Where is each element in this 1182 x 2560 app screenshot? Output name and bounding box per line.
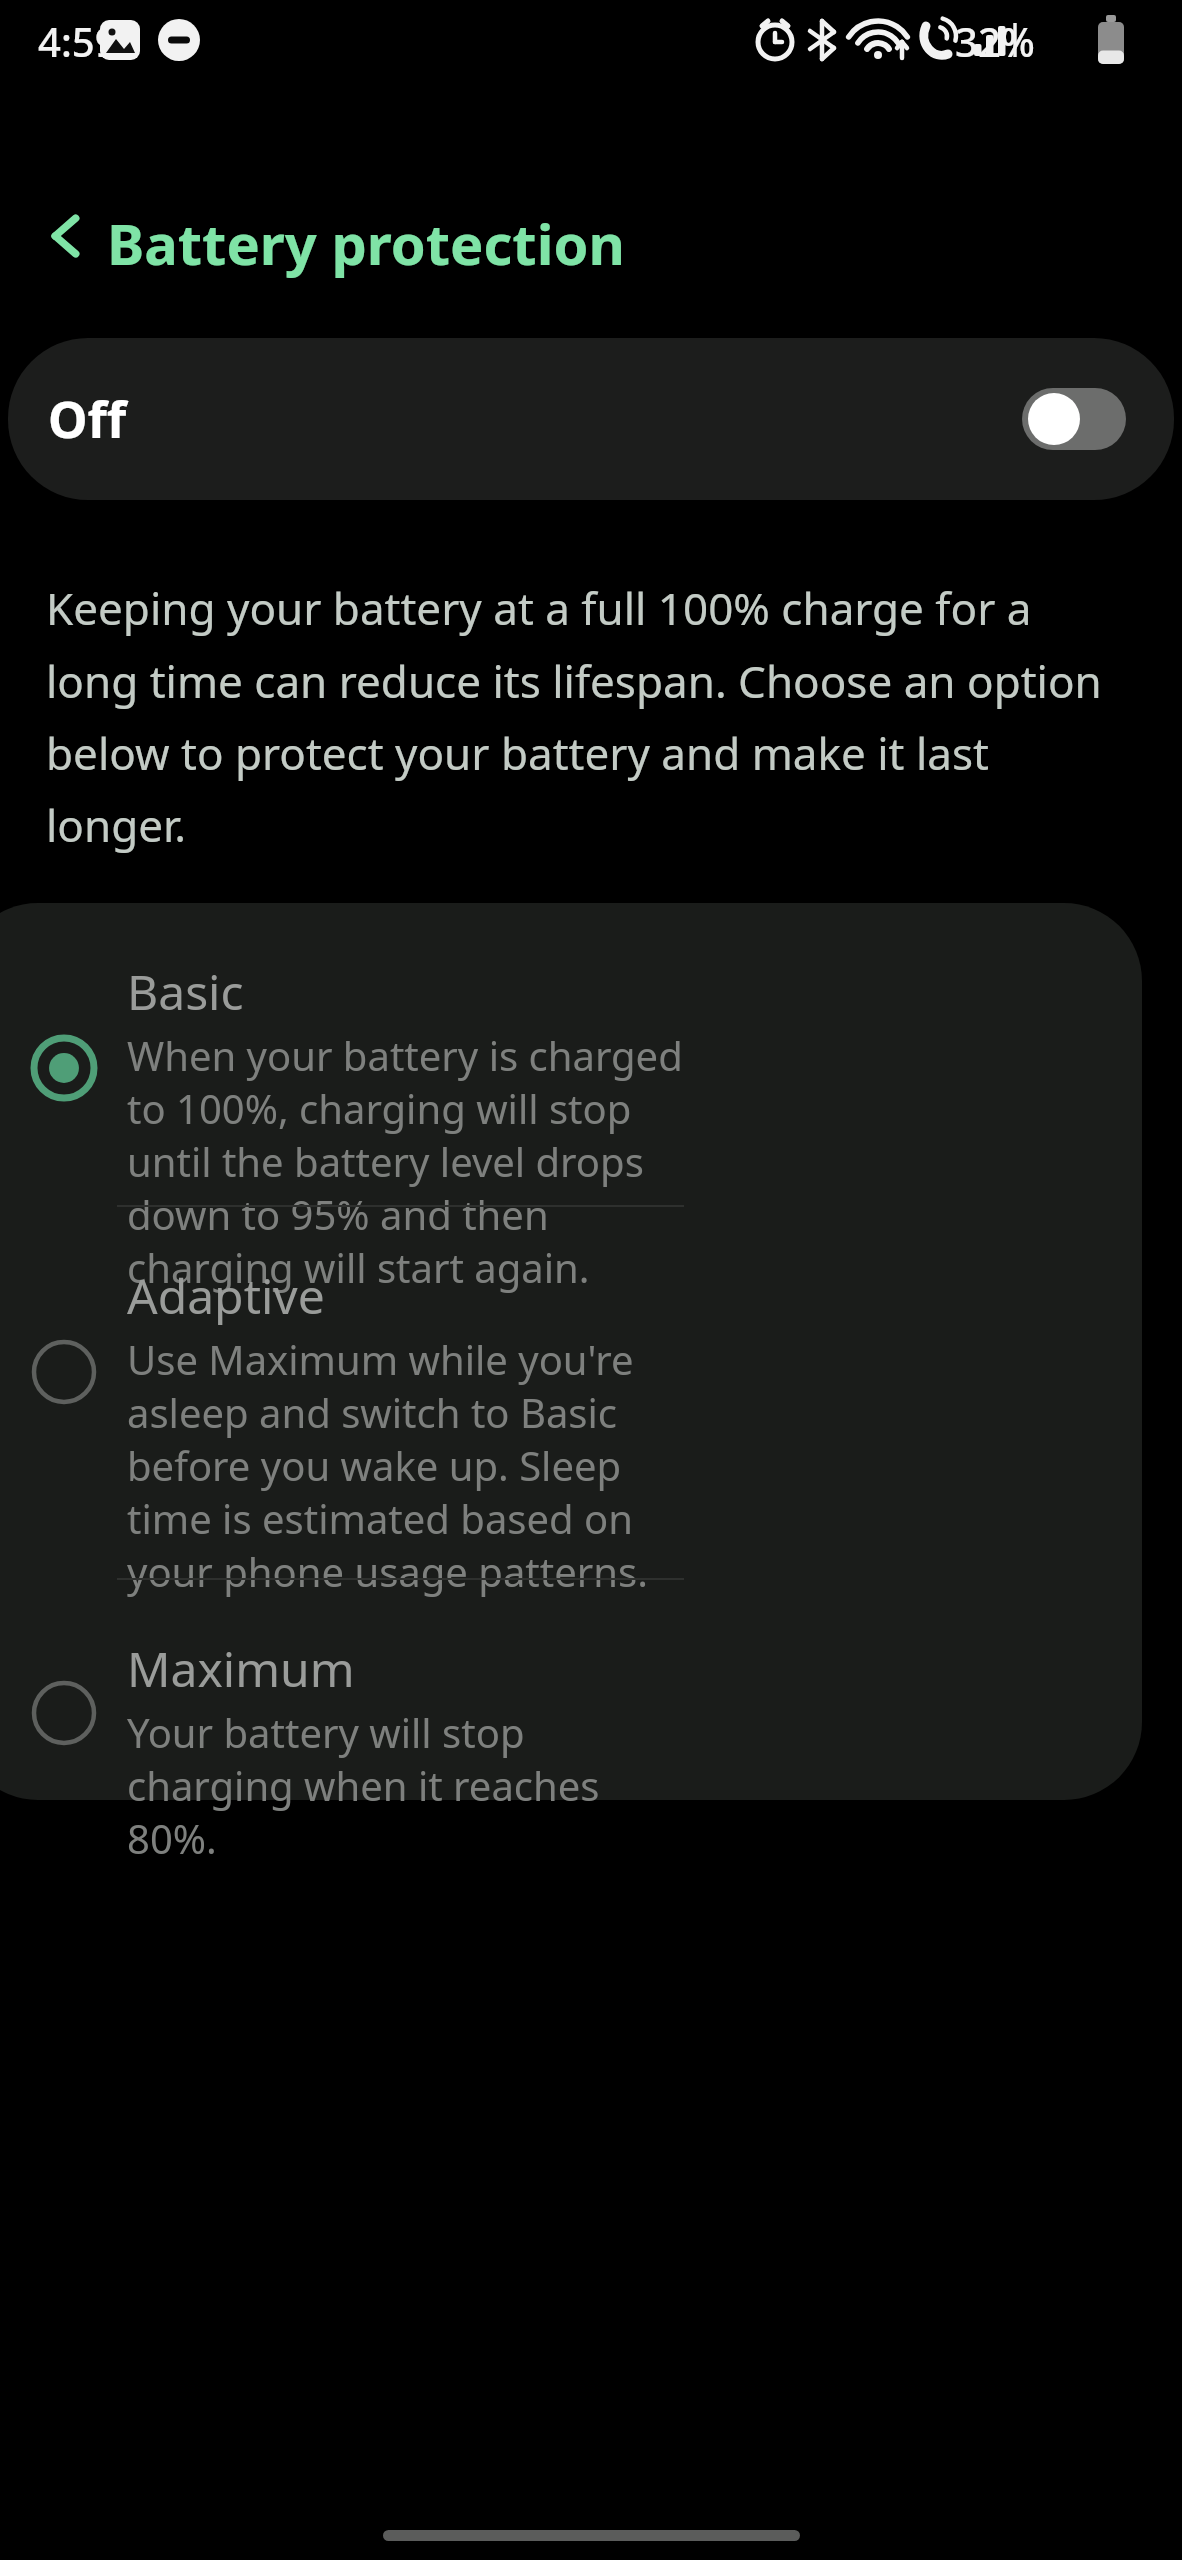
staticText: Your battery will stop charging when it … [127, 1705, 692, 1865]
button[interactable] [0, 903, 1182, 1201]
staticText: Off [48, 385, 127, 453]
staticText: When your battery is charged to 100%, ch… [127, 1028, 692, 1294]
button[interactable]: Off [8, 338, 1174, 500]
staticText: Battery protection [107, 205, 625, 281]
staticText: Basic [127, 959, 244, 1024]
button[interactable] [0, 1580, 1182, 1800]
staticText: Use Maximum while you're asleep and swit… [127, 1332, 692, 1598]
staticText: Maximum [127, 1636, 355, 1701]
staticText: 32% [955, 14, 1035, 68]
button[interactable] [0, 1207, 1182, 1504]
staticText: Keeping your battery at a full 100% char… [46, 578, 1116, 854]
staticText: Adaptive [127, 1263, 325, 1328]
button[interactable]: Back [18, 186, 114, 286]
staticText: 4:59 [38, 14, 118, 68]
